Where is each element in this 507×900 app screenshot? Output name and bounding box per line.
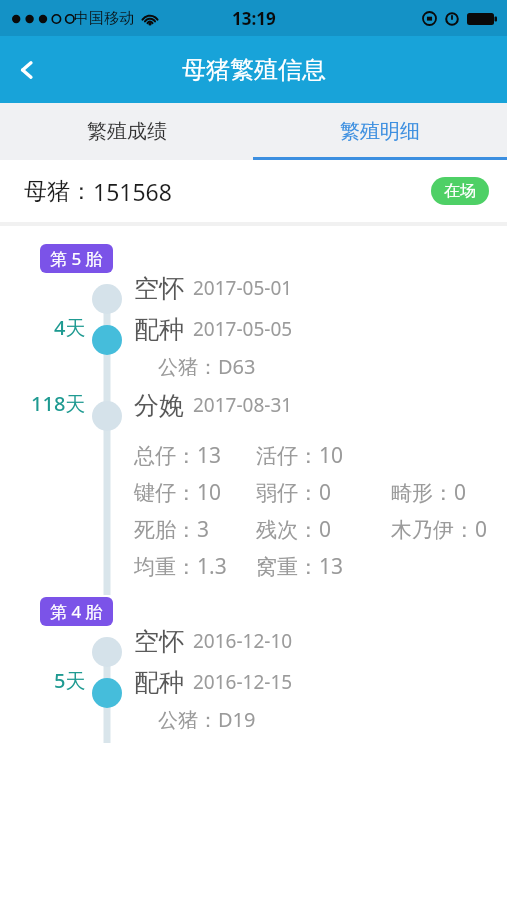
staticText: 配种 xyxy=(134,314,184,345)
staticText: 中国移动 xyxy=(74,9,134,28)
staticText: 2017-05-01 xyxy=(193,275,293,301)
staticText: 残次：0 xyxy=(256,515,332,544)
staticText: 均重：1.3 xyxy=(134,552,227,581)
button[interactable]: 第 4 胎 xyxy=(40,597,113,626)
staticText: 繁殖成绩 xyxy=(87,119,167,144)
staticText: 4天 xyxy=(54,314,86,341)
staticText: 13:19 xyxy=(232,7,276,30)
button[interactable]: 繁殖成绩 xyxy=(0,103,253,160)
staticText: 窝重：13 xyxy=(256,552,344,581)
staticText: 2017-05-05 xyxy=(193,316,293,342)
staticText: 活仔：10 xyxy=(256,441,344,470)
staticText: 死胎：3 xyxy=(134,515,210,544)
button[interactable]: Back xyxy=(0,43,54,97)
staticText: 母猪： xyxy=(24,177,93,206)
staticText: 118天 xyxy=(31,390,86,417)
staticText: 第 5 胎 xyxy=(50,247,103,270)
staticText: 繁殖明细 xyxy=(340,119,420,144)
staticText: 总仔：13 xyxy=(134,441,222,470)
staticText: 第 4 胎 xyxy=(50,600,103,623)
staticText: 键仔：10 xyxy=(134,478,222,507)
staticText: 弱仔：0 xyxy=(256,478,332,507)
staticText: 在场 xyxy=(444,181,476,201)
staticText: 2016-12-10 xyxy=(193,628,293,654)
staticText: 2016-12-15 xyxy=(193,669,293,695)
button[interactable]: 繁殖明细 xyxy=(253,103,507,160)
staticText: 公猪：D63 xyxy=(158,353,256,380)
staticText: 公猪：D19 xyxy=(158,706,256,733)
staticText: 空怀 xyxy=(134,626,184,657)
button[interactable]: 第 5 胎 xyxy=(40,244,113,273)
staticText: 151568 xyxy=(93,176,172,207)
staticText: 木乃伊：0 xyxy=(391,515,488,544)
button[interactable]: 在场 xyxy=(431,177,489,205)
staticText: 畸形：0 xyxy=(391,478,467,507)
staticText: 配种 xyxy=(134,667,184,698)
staticText: 母猪繁殖信息 xyxy=(182,55,326,85)
staticText: 空怀 xyxy=(134,273,184,304)
staticText: 2017-08-31 xyxy=(193,392,293,418)
staticText: 分娩 xyxy=(134,390,184,421)
staticText: 5天 xyxy=(54,667,86,694)
